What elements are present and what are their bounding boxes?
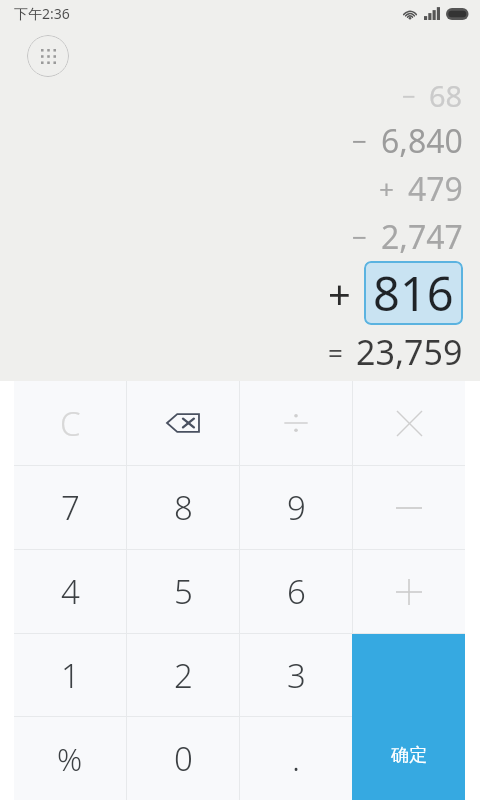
staticText: 2 bbox=[174, 653, 193, 698]
staticText: − bbox=[402, 80, 416, 112]
staticText: 9 bbox=[287, 485, 306, 530]
staticText: 479 bbox=[408, 167, 463, 211]
button[interactable]: Minus bbox=[353, 466, 465, 549]
button[interactable]: 8 bbox=[127, 466, 239, 549]
button[interactable]: 1 bbox=[14, 634, 126, 716]
staticText: − bbox=[352, 123, 368, 159]
staticText: 4 bbox=[61, 569, 80, 614]
staticText: 1 bbox=[61, 653, 80, 698]
button[interactable]: 816 bbox=[373, 261, 454, 325]
button[interactable]: 5 bbox=[127, 550, 239, 633]
button[interactable]: 确定 bbox=[352, 634, 465, 800]
button[interactable]: Backspace bbox=[127, 381, 239, 465]
button[interactable]: Clear bbox=[14, 381, 126, 465]
staticText: . bbox=[292, 736, 301, 781]
button[interactable]: 9 bbox=[240, 466, 352, 549]
staticText: 2,747 bbox=[381, 215, 463, 259]
button[interactable]: Plus bbox=[353, 550, 465, 633]
staticText: + bbox=[328, 266, 351, 320]
button[interactable]: . bbox=[240, 717, 352, 800]
button[interactable]: 0 bbox=[127, 717, 239, 800]
button[interactable]: 2 bbox=[127, 634, 239, 716]
staticText: 816 bbox=[373, 261, 454, 325]
staticText: 6 bbox=[287, 569, 306, 614]
staticText: C bbox=[60, 401, 81, 446]
staticText: 3 bbox=[287, 653, 306, 698]
staticText: 0 bbox=[174, 736, 193, 781]
staticText: 确定 bbox=[391, 744, 427, 767]
staticText: 6,840 bbox=[381, 119, 463, 163]
button[interactable]: 3 bbox=[240, 634, 352, 716]
staticText: − bbox=[352, 219, 368, 255]
button[interactable]: % bbox=[14, 717, 126, 800]
staticText: = bbox=[328, 335, 343, 370]
staticText: 8 bbox=[174, 485, 193, 530]
staticText: 5 bbox=[174, 569, 193, 614]
staticText: 68 bbox=[429, 76, 463, 115]
button[interactable]: 4 bbox=[14, 550, 126, 633]
button[interactable]: 6 bbox=[240, 550, 352, 633]
staticText: 下午2:36 bbox=[14, 4, 70, 23]
button[interactable]: Apps bbox=[27, 35, 69, 77]
button[interactable]: Multiply bbox=[353, 381, 465, 465]
staticText: 23,759 bbox=[356, 329, 463, 375]
staticText: 7 bbox=[61, 485, 80, 530]
button[interactable]: 7 bbox=[14, 466, 126, 549]
staticText: % bbox=[57, 738, 83, 780]
staticText: + bbox=[379, 171, 395, 207]
